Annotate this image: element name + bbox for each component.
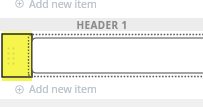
staticText: Add new item <box>29 0 97 9</box>
button[interactable]: Add new item <box>0 82 203 96</box>
staticText: HEADER 1 <box>76 18 128 31</box>
staticText: Add new item <box>29 82 97 96</box>
button[interactable]: Drag handle <box>2 34 32 77</box>
button[interactable] <box>28 34 203 77</box>
button[interactable]: Add new item <box>0 0 203 9</box>
button[interactable]: HEADER 1 <box>0 18 203 31</box>
